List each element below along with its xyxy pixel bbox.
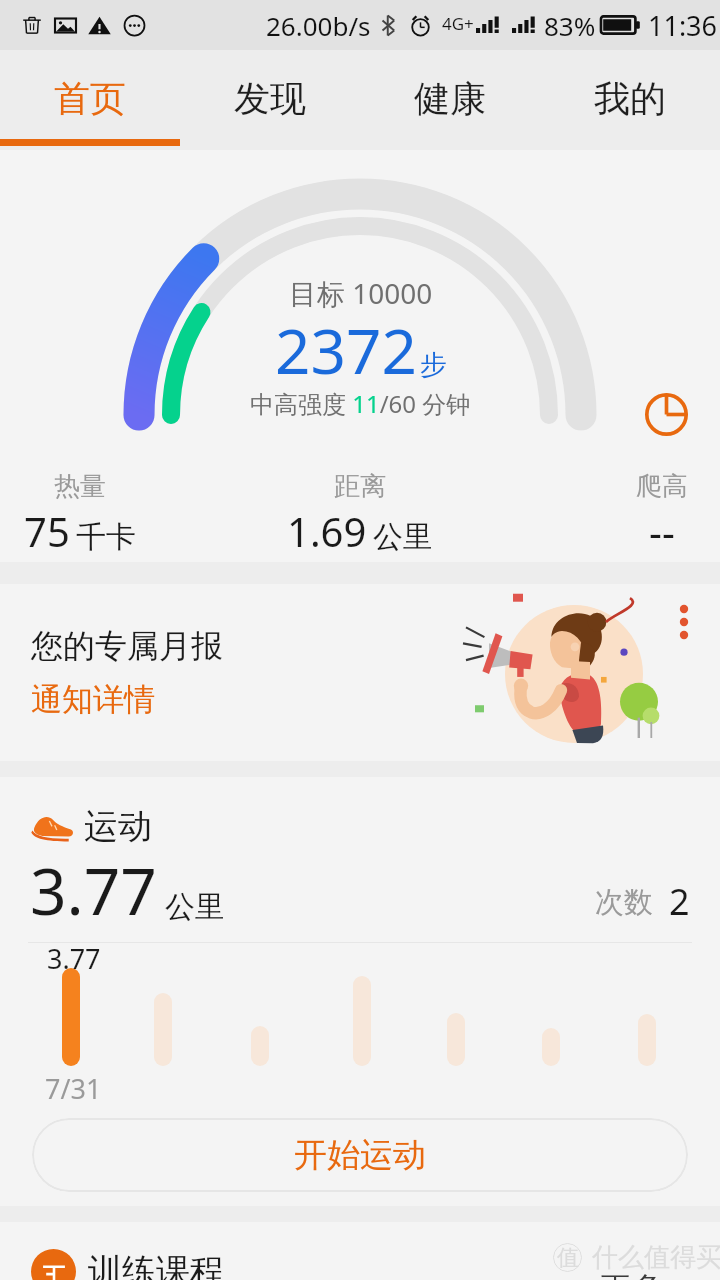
staticText: 什么值得买 bbox=[592, 1241, 720, 1274]
button[interactable]: 开始运动 bbox=[32, 1118, 688, 1192]
staticText: 发现 bbox=[234, 76, 306, 121]
button[interactable]: 您的专属月报 bbox=[0, 584, 720, 761]
staticText: 首页 bbox=[54, 76, 126, 121]
staticText: 2372 bbox=[275, 308, 417, 392]
button[interactable]: More options bbox=[666, 603, 702, 639]
staticText: 2 bbox=[669, 877, 690, 926]
staticText: 热量 bbox=[54, 470, 106, 503]
staticText: 3.77 bbox=[30, 847, 157, 934]
button[interactable]: 热量 bbox=[0, 470, 190, 558]
staticText: 目标 10000 bbox=[289, 274, 433, 312]
button[interactable]: Statistics bbox=[645, 393, 688, 436]
staticText: 75 bbox=[24, 504, 70, 558]
button[interactable]: 运动 bbox=[30, 805, 152, 848]
staticText: 训练课程 bbox=[88, 1250, 224, 1280]
button[interactable]: 训练课程 bbox=[31, 1249, 224, 1280]
staticText: 次数 bbox=[595, 884, 653, 921]
staticText: 步 bbox=[420, 348, 447, 382]
staticText: 83% bbox=[544, 8, 596, 43]
staticText: 中高强度 11/60 分钟 bbox=[250, 387, 471, 420]
button[interactable]: 爬高 bbox=[552, 470, 720, 558]
staticText: 公里 bbox=[373, 518, 433, 556]
button[interactable]: 更多 bbox=[600, 1269, 698, 1280]
staticText: 7/31 bbox=[45, 1070, 102, 1107]
staticText: 距离 bbox=[334, 470, 386, 503]
staticText: 11:36 bbox=[648, 7, 718, 44]
staticText: 健康 bbox=[414, 76, 486, 121]
staticText: 26.00b/s bbox=[266, 8, 371, 43]
staticText: 4G+ bbox=[442, 12, 474, 35]
button[interactable]: 发现 bbox=[180, 50, 360, 150]
staticText: 更多 bbox=[600, 1269, 662, 1280]
staticText: 千卡 bbox=[76, 518, 136, 556]
staticText: 运动 bbox=[84, 805, 152, 848]
button[interactable]: 首页 bbox=[0, 50, 180, 150]
staticText: 通知详情 bbox=[31, 680, 155, 719]
staticText: 公里 bbox=[165, 888, 225, 926]
staticText: 我的 bbox=[594, 76, 666, 121]
staticText: 开始运动 bbox=[294, 1134, 426, 1176]
button[interactable]: 我的 bbox=[540, 50, 720, 150]
staticText: 值 bbox=[557, 1244, 579, 1272]
staticText: 3.77 bbox=[47, 940, 101, 977]
button[interactable]: 距离 bbox=[250, 470, 470, 558]
button[interactable]: 健康 bbox=[360, 50, 540, 150]
staticText: 您的专属月报 bbox=[31, 626, 223, 666]
staticText: -- bbox=[649, 504, 675, 558]
staticText: 1.69 bbox=[287, 504, 367, 558]
staticText: 爬高 bbox=[636, 470, 688, 503]
